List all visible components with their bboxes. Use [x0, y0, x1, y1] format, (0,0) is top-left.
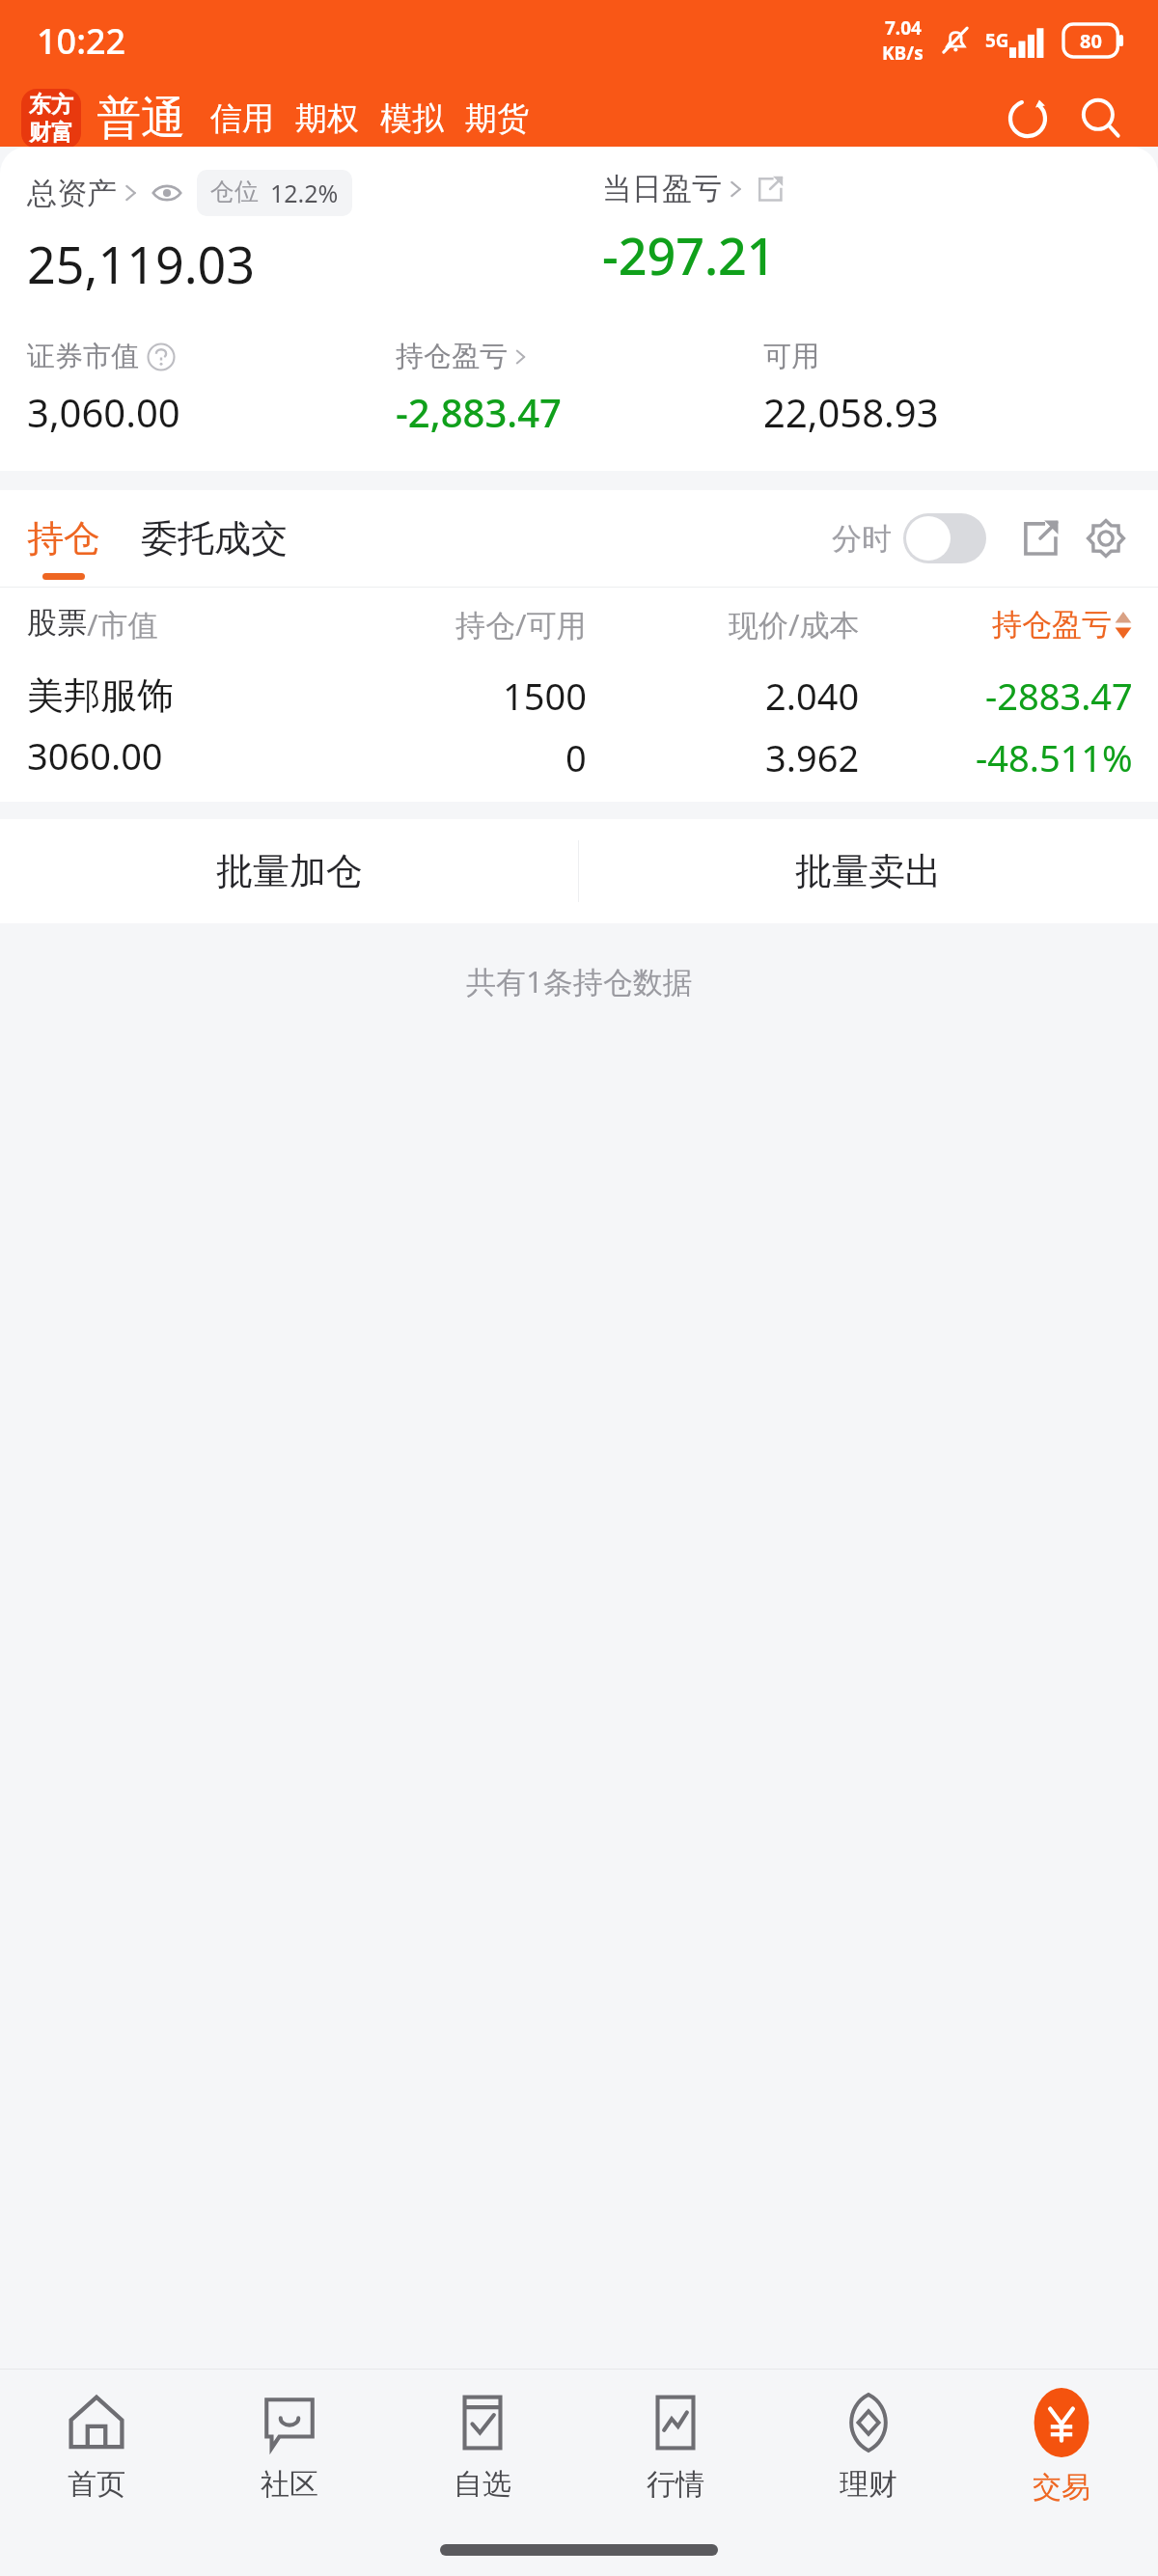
staticText: 总资产 — [27, 175, 117, 212]
button[interactable]: 持仓盈亏 — [396, 339, 528, 374]
staticText: -2883.47 — [985, 671, 1133, 721]
staticText: 共有1条持仓数据 — [466, 961, 693, 1001]
staticText: 委托成交 — [141, 515, 288, 562]
staticText: 3.962 — [765, 732, 860, 782]
button[interactable]: Help — [147, 343, 176, 371]
staticText: 持仓盈亏 — [992, 606, 1112, 644]
staticText: 财 — [29, 119, 51, 147]
staticText: 可用 — [763, 339, 819, 374]
button[interactable]: Settings — [1081, 513, 1131, 563]
button[interactable]: Refresh — [998, 89, 1058, 149]
staticText: 持仓 — [27, 515, 100, 562]
button[interactable]: 东方财富 — [21, 89, 81, 149]
button[interactable]: 批量加仓 — [0, 819, 578, 923]
staticText: 10:22 — [37, 17, 126, 65]
button[interactable]: 理财 — [772, 2383, 965, 2510]
button[interactable]: 仓位 — [210, 177, 339, 209]
staticText: 行情 — [647, 2466, 704, 2503]
button[interactable]: 总资产 — [27, 170, 352, 216]
button[interactable]: 模拟 — [380, 98, 444, 139]
button[interactable]: 分时 toggle — [903, 513, 986, 563]
button[interactable]: 社区 — [193, 2383, 386, 2510]
button[interactable]: 信用 — [210, 98, 274, 139]
staticText: 分时 — [832, 520, 892, 558]
staticText: 东 — [29, 91, 51, 119]
button[interactable]: 行情 — [579, 2383, 772, 2510]
button[interactable]: Toggle visibility — [151, 177, 183, 209]
staticText: 交易 — [1033, 2469, 1090, 2506]
staticText: 现价/成本 — [729, 604, 860, 644]
staticText: 批量加仓 — [216, 848, 363, 894]
button[interactable]: Expand — [1015, 513, 1065, 563]
staticText: 美邦服饰 — [27, 672, 174, 719]
staticText: 当日盈亏 — [602, 170, 722, 207]
staticText: 2.040 — [765, 671, 860, 721]
staticText: 批量卖出 — [795, 848, 942, 894]
staticText: 持仓盈亏 — [396, 339, 508, 374]
staticText: 富 — [51, 119, 73, 147]
staticText: -297.21 — [602, 221, 776, 289]
button[interactable]: Search — [1071, 89, 1131, 149]
staticText: 仓位 — [210, 177, 259, 206]
staticText: 3,060.00 — [27, 386, 180, 438]
staticText: 7.04 — [885, 15, 922, 41]
button[interactable]: 持仓 — [27, 515, 100, 562]
staticText: 80 — [1080, 28, 1102, 54]
staticText: 证券市值 — [27, 339, 139, 374]
staticText: 股票 — [27, 604, 87, 642]
button[interactable]: 当日盈亏 — [602, 170, 785, 207]
button[interactable]: 委托成交 — [141, 515, 288, 562]
staticText: 方 — [51, 91, 73, 119]
button[interactable]: 期货 — [465, 98, 529, 139]
staticText: 25,119.03 — [27, 230, 256, 298]
button[interactable]: 期权 — [295, 98, 359, 139]
staticText: -48.511% — [976, 732, 1133, 782]
staticText: -2,883.47 — [396, 386, 562, 438]
staticText: 22,058.93 — [763, 386, 939, 438]
button[interactable]: 交易 — [965, 2380, 1158, 2513]
staticText: 持仓/可用 — [455, 604, 587, 644]
staticText: 首页 — [68, 2466, 125, 2503]
staticText: 5G — [985, 28, 1009, 53]
button[interactable]: 首页 — [0, 2383, 193, 2510]
button[interactable]: 普通 — [96, 91, 185, 147]
staticText: 3060.00 — [27, 730, 163, 781]
button[interactable]: 批量卖出 — [579, 819, 1158, 923]
staticText: 1500 — [503, 671, 587, 721]
button[interactable]: 自选 — [386, 2383, 579, 2510]
staticText: 社区 — [261, 2466, 318, 2503]
staticText: 12.2% — [270, 177, 339, 209]
staticText: 理财 — [840, 2466, 897, 2503]
staticText: /市值 — [87, 604, 158, 644]
staticText: 自选 — [454, 2466, 511, 2503]
staticText: 0 — [565, 732, 587, 782]
button[interactable]: 分时 — [832, 513, 986, 563]
staticText: KB/s — [882, 41, 924, 66]
